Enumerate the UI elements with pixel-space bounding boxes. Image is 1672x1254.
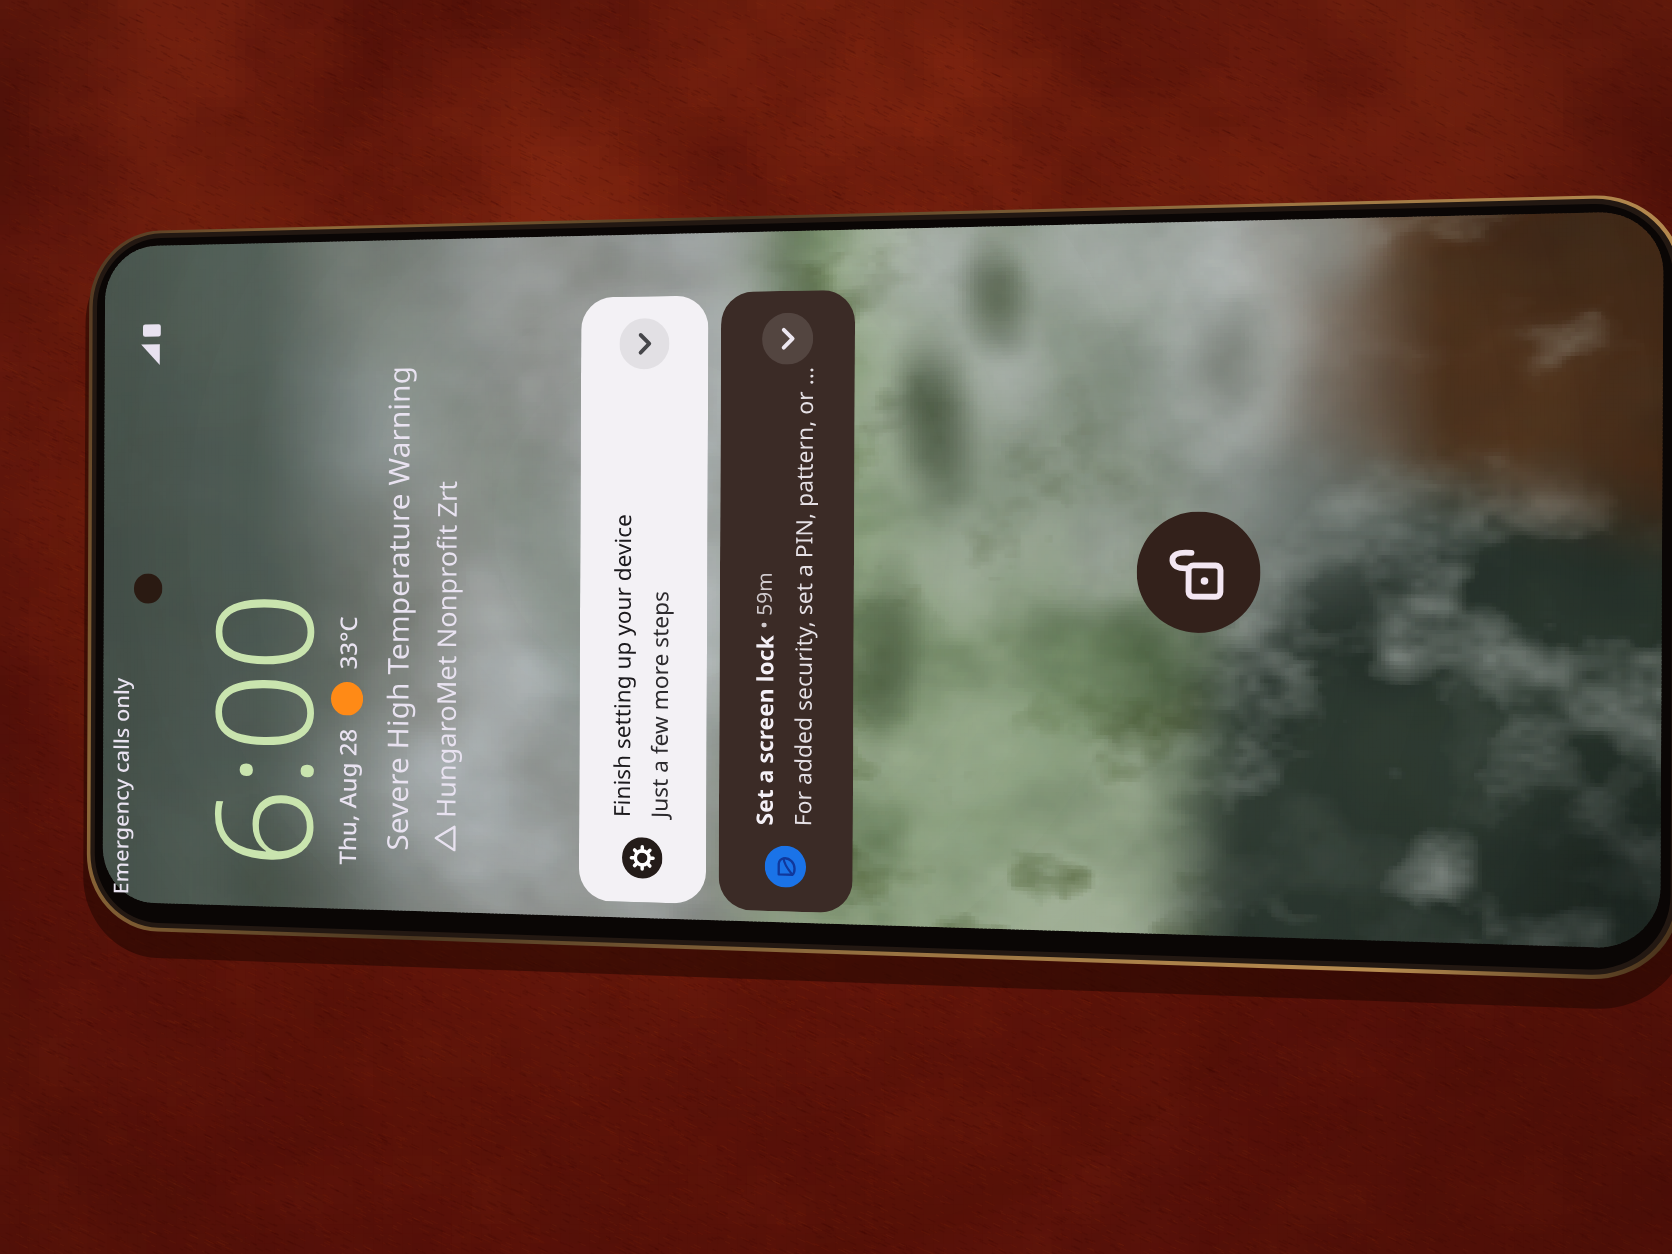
button[interactable]: Expand notification — [619, 318, 670, 370]
staticText: For added security, set a PIN, pattern, … — [786, 366, 819, 827]
staticText: • 59m — [750, 572, 779, 634]
staticText: Just a few more steps — [643, 590, 674, 818]
staticText: Thu, Aug 28 — [331, 728, 363, 865]
staticText: Set a screen lock — [748, 634, 779, 826]
button[interactable]: Finish setting up your device — [579, 295, 708, 904]
button[interactable]: Set a screen lock — [718, 290, 855, 913]
staticText: 33°C — [332, 615, 363, 670]
staticText: HungaroMet Nonprofit Zrt — [427, 480, 464, 818]
button[interactable]: Emergency calls only — [106, 677, 134, 895]
staticText: Emergency calls only — [106, 677, 134, 895]
staticText: Finish setting up your device — [606, 513, 637, 817]
button[interactable]: Expand notification — [762, 312, 813, 365]
button[interactable]: Severe High Temperature Warning — [377, 365, 465, 852]
button[interactable]: Thu, Aug 28 — [330, 615, 363, 865]
staticText: 6:00 — [169, 591, 353, 871]
staticText: Severe High Temperature Warning — [377, 365, 418, 851]
button[interactable]: Unlock — [1136, 511, 1261, 633]
button[interactable]: 6:00 — [169, 591, 353, 871]
